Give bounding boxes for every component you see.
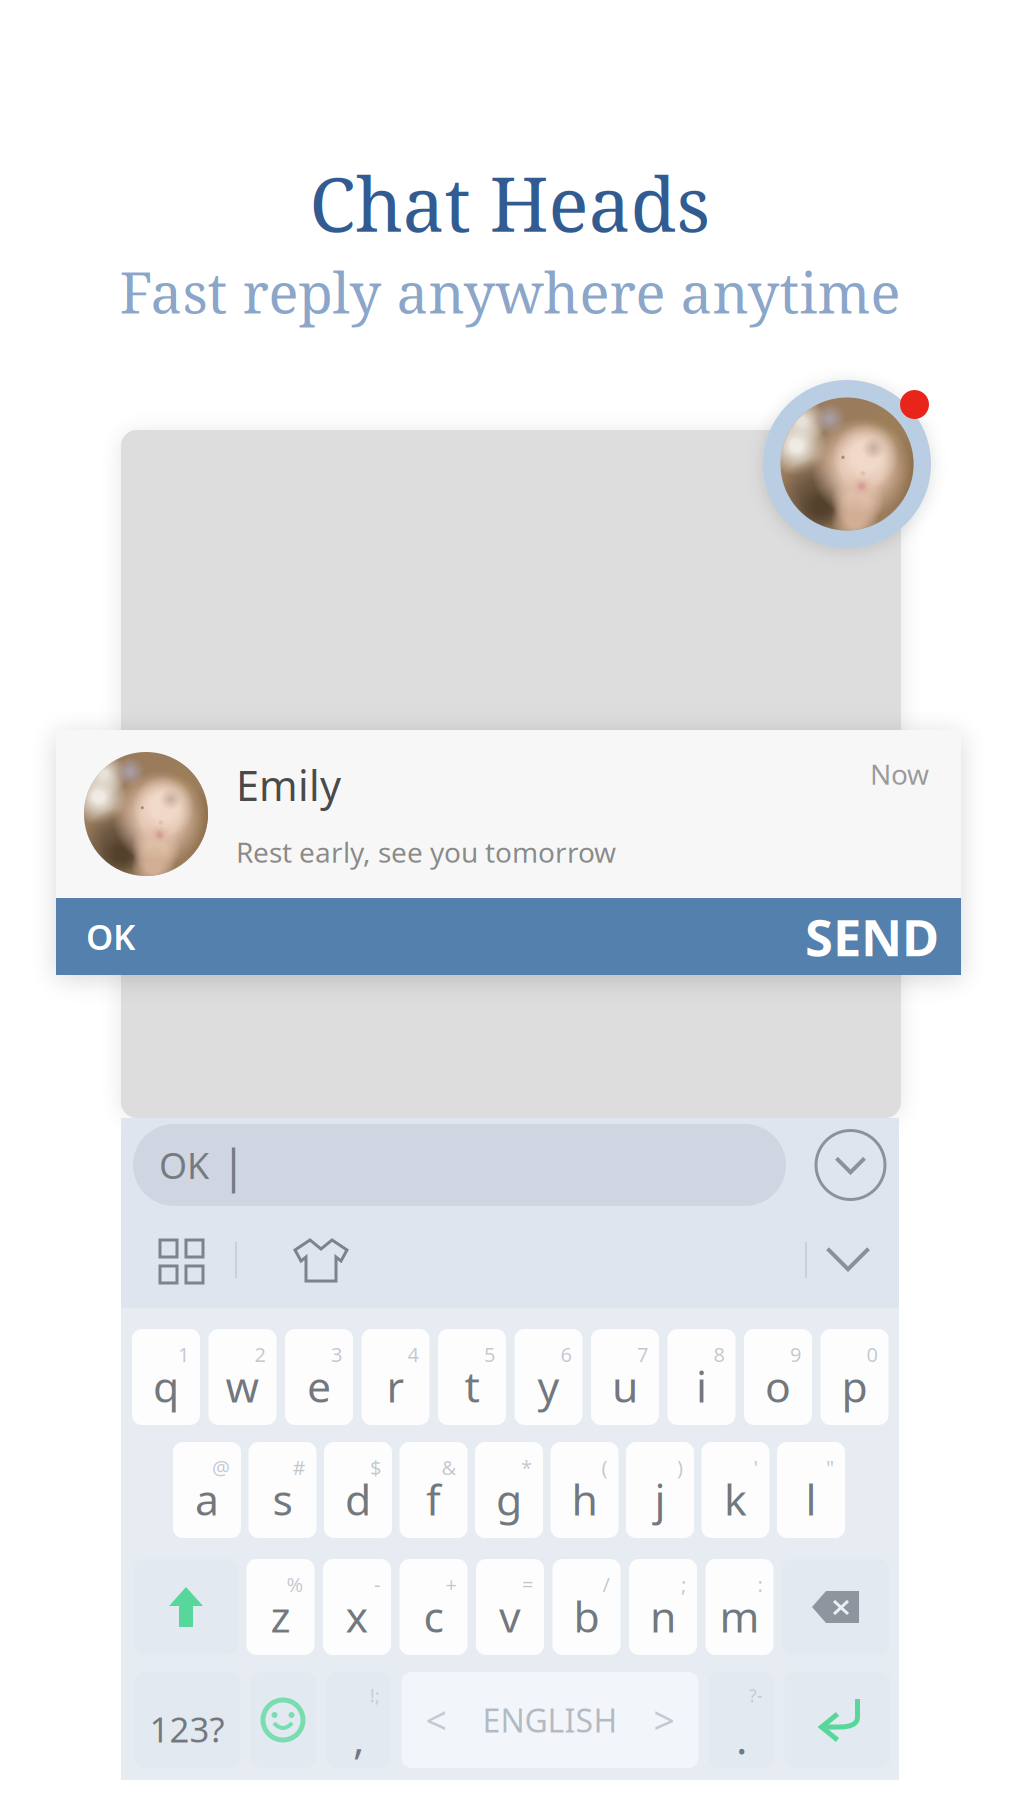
staticText: | — [221, 1135, 246, 1195]
staticText: OK — [86, 913, 135, 959]
button[interactable]: " — [777, 1442, 845, 1538]
staticText: t — [464, 1358, 479, 1414]
button[interactable]: 3 — [285, 1329, 353, 1425]
button[interactable]: Return — [784, 1672, 890, 1768]
staticText: z — [270, 1588, 290, 1644]
staticText: m — [719, 1588, 759, 1644]
staticText: 2 — [254, 1341, 265, 1368]
staticText: SEND — [805, 903, 939, 970]
button[interactable]: SEND — [779, 898, 939, 975]
staticText: !; — [370, 1684, 380, 1707]
staticText: v — [499, 1588, 521, 1644]
button[interactable]: - — [323, 1559, 391, 1655]
button[interactable]: ?- — [709, 1672, 774, 1768]
button[interactable]: ; — [629, 1559, 697, 1655]
button[interactable]: $ — [324, 1442, 392, 1538]
staticText: a — [195, 1471, 219, 1527]
staticText: k — [724, 1471, 747, 1527]
staticText: s — [272, 1471, 292, 1527]
staticText: 9 — [790, 1341, 801, 1368]
staticText: = — [522, 1571, 533, 1598]
staticText: w — [225, 1358, 259, 1414]
staticText: 0 — [866, 1341, 877, 1368]
button[interactable]: Hide toolbar — [807, 1236, 889, 1284]
button[interactable]: / — [552, 1559, 620, 1655]
staticText: ) — [677, 1454, 683, 1481]
button[interactable]: & — [399, 1442, 467, 1538]
staticText: e — [307, 1358, 331, 1414]
button[interactable]: @ — [173, 1442, 241, 1538]
button[interactable]: 0 — [820, 1329, 888, 1425]
button[interactable]: * — [475, 1442, 543, 1538]
button[interactable]: 5 — [438, 1329, 506, 1425]
staticText: p — [841, 1358, 867, 1414]
button[interactable]: 7 — [591, 1329, 659, 1425]
button[interactable]: : — [705, 1559, 773, 1655]
button[interactable]: 1 — [132, 1329, 200, 1425]
button[interactable]: !; — [326, 1672, 391, 1768]
staticText: Rest early, see you tomorrow — [236, 833, 616, 871]
staticText: * — [521, 1454, 532, 1481]
button[interactable]: % — [246, 1559, 314, 1655]
button[interactable]: Backspace — [782, 1559, 889, 1655]
button[interactable]: ) — [626, 1442, 694, 1538]
staticText: f — [426, 1471, 441, 1527]
staticText: : — [757, 1571, 762, 1598]
button[interactable]: 8 — [667, 1329, 735, 1425]
staticText: l — [805, 1471, 816, 1527]
staticText: 1 — [178, 1341, 189, 1368]
button[interactable]: 2 — [208, 1329, 276, 1425]
staticText: @ — [212, 1454, 230, 1481]
staticText: b — [573, 1588, 599, 1644]
staticText: OK — [159, 1141, 209, 1189]
staticText: n — [650, 1588, 676, 1644]
staticText: 6 — [560, 1341, 571, 1368]
button[interactable]: 6 — [514, 1329, 582, 1425]
button[interactable]: 9 — [744, 1329, 812, 1425]
staticText: 8 — [713, 1341, 724, 1368]
button[interactable]: Keyboard themes — [157, 1236, 203, 1284]
staticText: d — [345, 1471, 371, 1527]
staticText: x — [345, 1588, 368, 1644]
button[interactable]: 123? — [134, 1672, 240, 1768]
staticText: ENGLISH — [482, 1699, 617, 1741]
staticText: # — [292, 1454, 305, 1481]
staticText: o — [765, 1358, 791, 1414]
staticText: / — [602, 1571, 609, 1598]
staticText: $ — [370, 1454, 381, 1481]
staticText: . — [736, 1710, 747, 1766]
staticText: & — [441, 1454, 456, 1481]
button[interactable]: Emoji — [250, 1672, 315, 1768]
staticText: j — [654, 1471, 665, 1527]
button[interactable]: # — [248, 1442, 316, 1538]
staticText: h — [571, 1471, 597, 1527]
button[interactable]: Shift — [134, 1559, 238, 1655]
button[interactable]: Chat head Emily — [763, 380, 931, 548]
staticText: 7 — [637, 1341, 648, 1368]
button[interactable]: OK — [86, 898, 206, 975]
button[interactable]: Space, English — [401, 1672, 698, 1768]
button[interactable]: = — [476, 1559, 544, 1655]
staticText: g — [496, 1471, 522, 1527]
button[interactable]: ' — [701, 1442, 769, 1538]
staticText: ' — [753, 1454, 758, 1481]
staticText: % — [286, 1571, 303, 1598]
staticText: - — [374, 1571, 380, 1598]
button[interactable]: Collapse keyboard — [802, 1118, 899, 1212]
button[interactable]: 4 — [361, 1329, 429, 1425]
staticText: ?- — [749, 1684, 763, 1707]
button[interactable]: ( — [550, 1442, 618, 1538]
staticText: Chat Heads — [309, 152, 710, 254]
staticText: , — [353, 1710, 364, 1766]
button[interactable]: Stickers — [289, 1236, 355, 1284]
staticText: ; — [681, 1571, 686, 1598]
staticText: 123? — [149, 1706, 224, 1752]
staticText: + — [445, 1571, 456, 1598]
staticText: 3 — [331, 1341, 342, 1368]
staticText: ( — [601, 1454, 607, 1481]
staticText: q — [153, 1358, 179, 1414]
staticText: 4 — [407, 1341, 418, 1368]
staticText: Fast reply anywhere anytime — [119, 254, 900, 330]
button[interactable]: + — [399, 1559, 467, 1655]
staticText: > — [653, 1695, 674, 1745]
